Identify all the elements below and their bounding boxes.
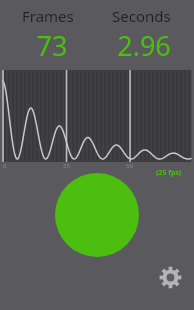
staticText: 2.96 [100, 27, 188, 61]
staticText: Seconds [112, 6, 171, 26]
staticText: 25 [63, 162, 70, 170]
staticText: 73 [8, 27, 96, 61]
staticText: (25 fps) [156, 168, 182, 178]
button[interactable]: Tap to animate [55, 173, 139, 257]
button[interactable]: Settings [159, 266, 182, 289]
staticText: 50 [126, 162, 133, 170]
staticText: 0 [3, 162, 7, 170]
staticText: Frames [22, 6, 74, 26]
